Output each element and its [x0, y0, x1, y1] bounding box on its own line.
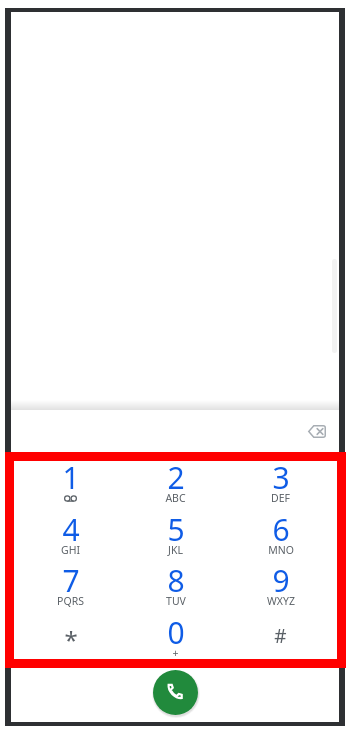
- staticText: *: [64, 623, 78, 656]
- button[interactable]: 9: [228, 560, 333, 610]
- staticText: 3: [272, 457, 290, 498]
- staticText: ABC: [165, 491, 186, 505]
- button[interactable]: 2: [123, 457, 228, 507]
- staticText: 5: [167, 509, 185, 550]
- button[interactable]: 4: [18, 509, 123, 559]
- staticText: 9: [272, 560, 290, 601]
- button[interactable]: 3: [228, 457, 333, 507]
- staticText: 4: [62, 509, 80, 550]
- staticText: WXYZ: [267, 594, 295, 608]
- staticText: 8: [167, 560, 185, 601]
- staticText: 1: [62, 457, 80, 498]
- staticText: JKL: [168, 543, 183, 557]
- staticText: 7: [62, 560, 80, 601]
- staticText: TUV: [166, 594, 186, 608]
- button[interactable]: *: [18, 612, 123, 662]
- button[interactable]: 0: [123, 612, 228, 662]
- button[interactable]: 5: [123, 509, 228, 559]
- staticText: DEF: [271, 491, 290, 505]
- staticText: GHI: [61, 543, 80, 557]
- button[interactable]: 6: [228, 509, 333, 559]
- button[interactable]: Backspace: [303, 417, 331, 445]
- staticText: 2: [167, 457, 185, 498]
- staticText: MNO: [268, 543, 294, 557]
- staticText: +: [172, 646, 179, 660]
- button[interactable]: 1: [18, 457, 123, 507]
- button[interactable]: 8: [123, 560, 228, 610]
- staticText: 0: [167, 612, 185, 653]
- staticText: #: [274, 623, 287, 649]
- button[interactable]: 7: [18, 560, 123, 610]
- staticText: 6: [272, 509, 290, 550]
- staticText: PQRS: [57, 594, 84, 608]
- button[interactable]: #: [228, 612, 333, 662]
- button[interactable]: Call: [153, 670, 198, 715]
